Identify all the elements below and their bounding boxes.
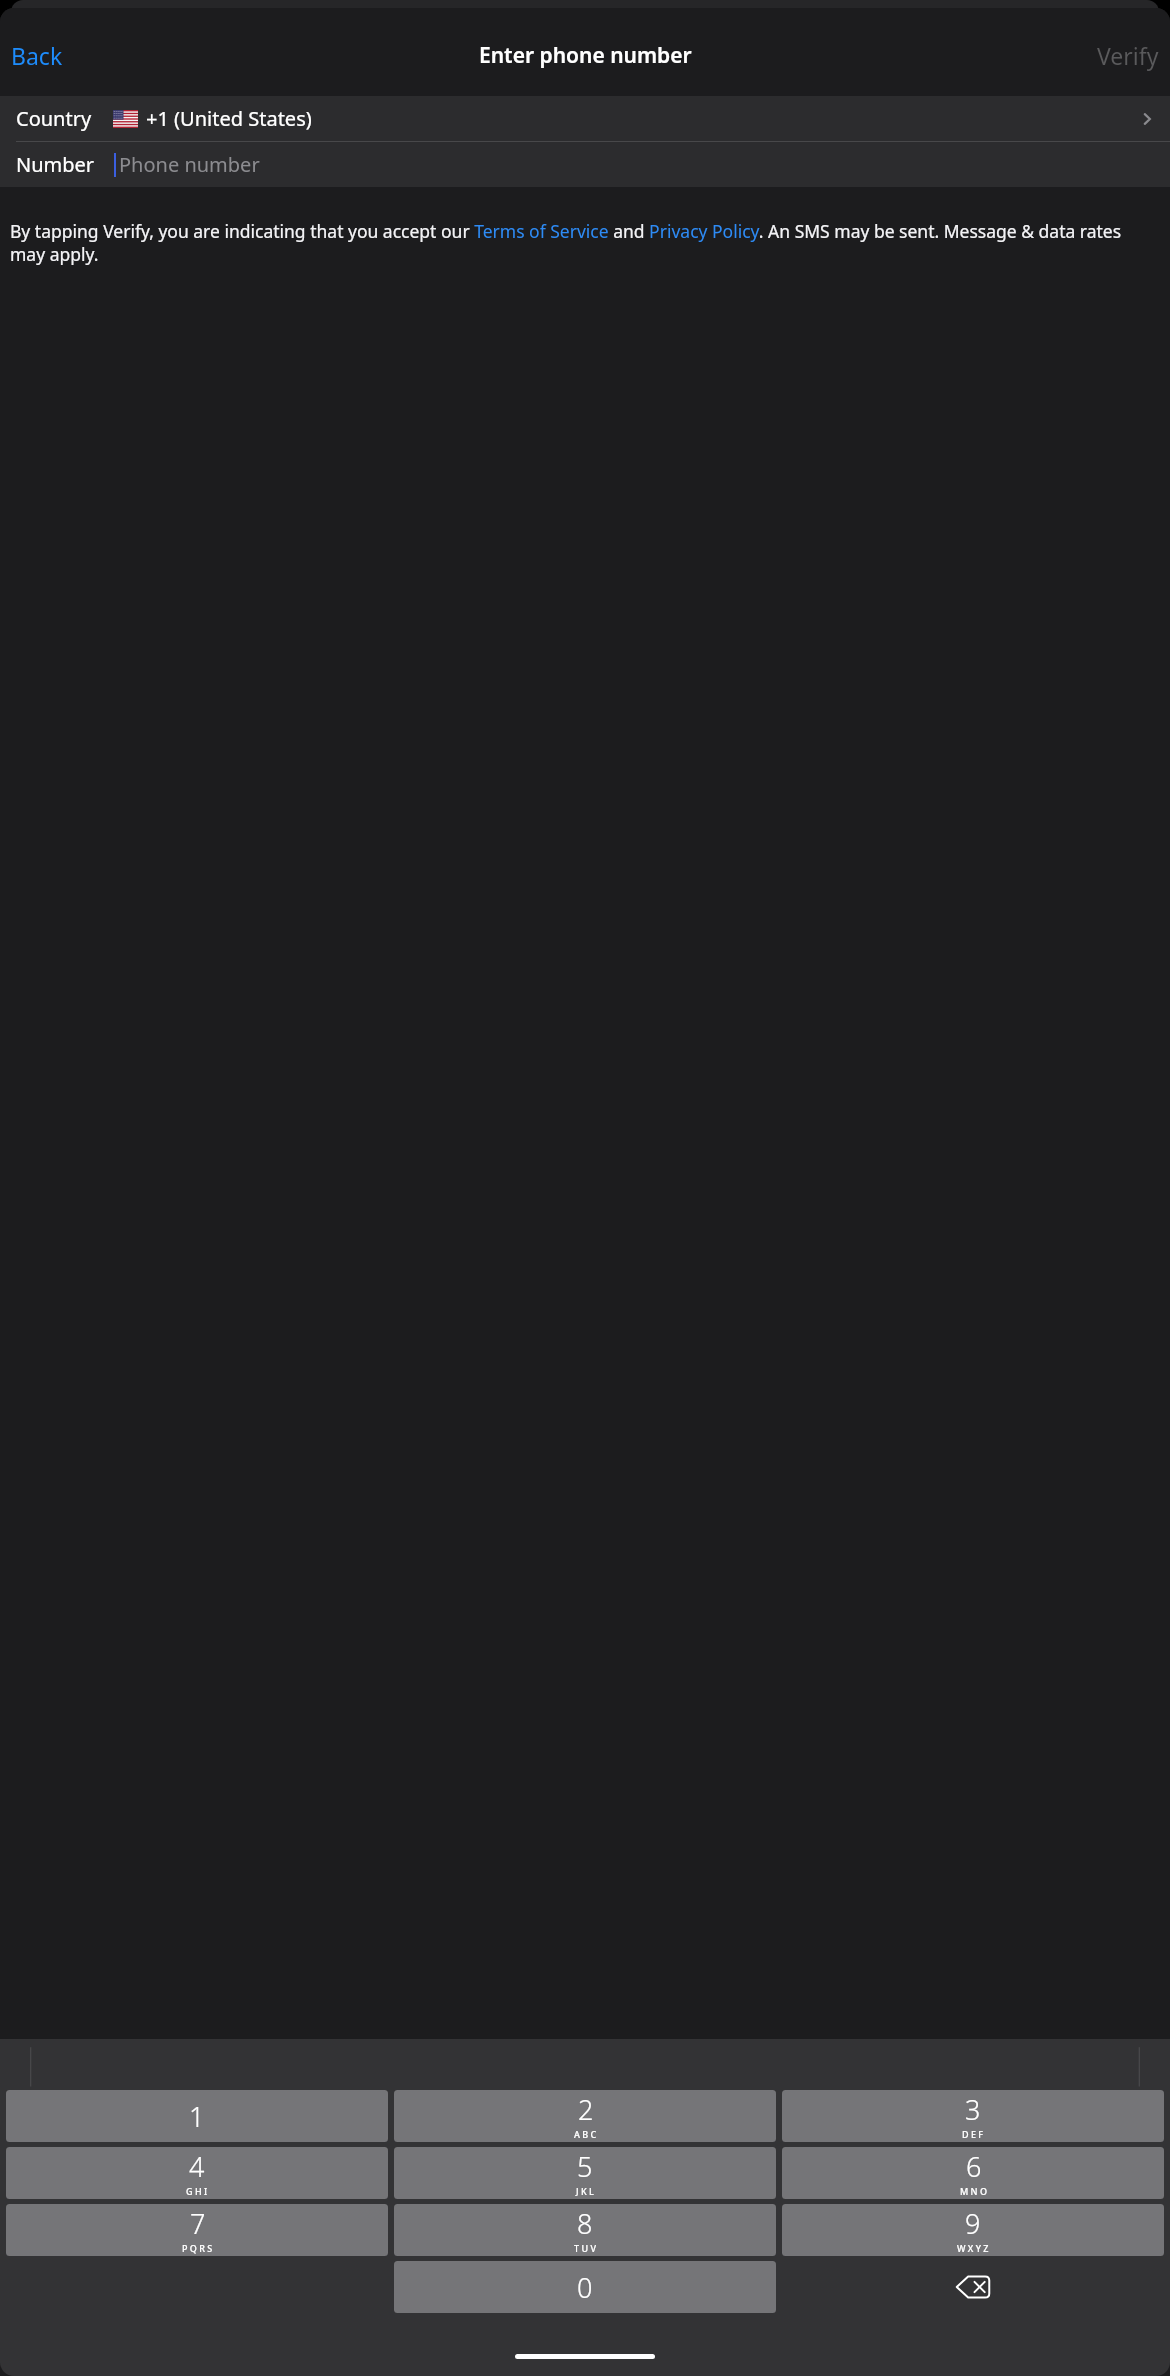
staticText: Back xyxy=(11,40,63,71)
button[interactable]: 4 xyxy=(6,2147,388,2199)
button[interactable]: 6 xyxy=(782,2147,1164,2199)
staticText: 5 xyxy=(577,2148,593,2185)
button[interactable]: Delete xyxy=(782,2261,1164,2313)
staticText: Country xyxy=(16,105,92,132)
button[interactable]: 5 xyxy=(394,2147,776,2199)
staticText: By tapping Verify, you are indicating th… xyxy=(10,219,1156,266)
staticText: 8 xyxy=(577,2205,593,2242)
staticText: 7 xyxy=(190,2205,206,2242)
button[interactable]: Country xyxy=(0,96,1170,141)
button[interactable]: 2 xyxy=(394,2090,776,2142)
button[interactable]: 1 xyxy=(6,2090,388,2142)
staticText: 6 xyxy=(966,2148,982,2185)
staticText: 3 xyxy=(965,2091,981,2128)
staticText: Verify xyxy=(1097,40,1159,71)
staticText: 0 xyxy=(577,2269,593,2306)
button[interactable]: Number xyxy=(0,142,1170,187)
button[interactable]: By tapping Verify, you are indicating th… xyxy=(10,219,1156,266)
button[interactable]: 3 xyxy=(782,2090,1164,2142)
button[interactable]: 9 xyxy=(782,2204,1164,2256)
staticText: J K L xyxy=(576,2185,594,2197)
staticText: W X Y Z xyxy=(957,2242,989,2254)
button[interactable]: Verify xyxy=(1083,32,1170,79)
staticText: Phone number xyxy=(119,151,260,178)
staticText: T U V xyxy=(574,2242,596,2254)
staticText: 4 xyxy=(189,2148,205,2185)
staticText: 9 xyxy=(965,2205,981,2242)
staticText: Number xyxy=(16,151,95,178)
button[interactable]: Back xyxy=(0,32,77,79)
button[interactable]: 0 xyxy=(394,2261,776,2313)
staticText: 1 xyxy=(189,2098,205,2135)
staticText: Enter phone number xyxy=(479,41,692,70)
staticText: P Q R S xyxy=(182,2242,213,2254)
staticText: M N O xyxy=(960,2185,987,2197)
staticText: 2 xyxy=(578,2091,594,2128)
other: Choose country xyxy=(1136,108,1158,130)
button[interactable]: 7 xyxy=(6,2204,388,2256)
staticText: D E F xyxy=(962,2128,984,2140)
staticText: +1 (United States) xyxy=(146,105,312,132)
staticText: A B C xyxy=(574,2128,597,2140)
button[interactable]: 8 xyxy=(394,2204,776,2256)
staticText: G H I xyxy=(186,2185,208,2197)
